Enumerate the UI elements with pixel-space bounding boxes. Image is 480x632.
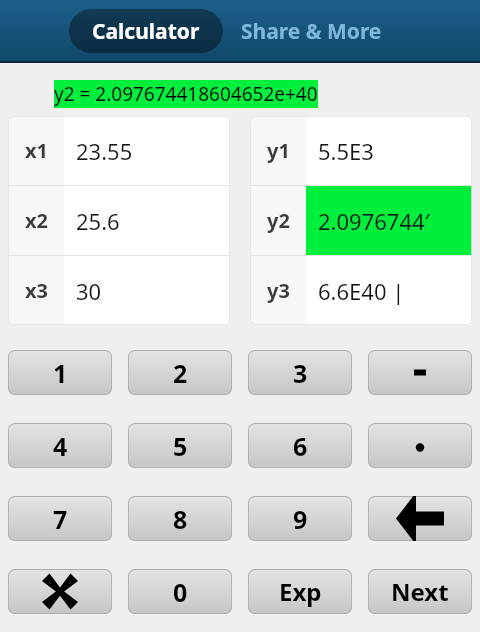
staticText: 4 [53, 429, 68, 463]
button[interactable]: 9 [248, 496, 352, 541]
button[interactable]: y1 [250, 116, 472, 185]
staticText: Exp [279, 575, 322, 608]
button[interactable]: x2 [8, 186, 230, 255]
staticText: x1 [25, 137, 48, 164]
staticText: Share & More [241, 17, 382, 46]
staticText: 5 [173, 429, 188, 463]
staticText: 30 [76, 276, 102, 306]
staticText: y2 [267, 207, 290, 234]
button[interactable]: Exp [248, 569, 352, 614]
button[interactable]: 5 [128, 423, 232, 468]
staticText: 2 [173, 356, 188, 390]
button[interactable]: 1 [8, 350, 112, 395]
staticText: 0 [173, 575, 188, 609]
staticText: 8 [173, 502, 188, 536]
button[interactable]: Clear [8, 569, 112, 614]
button[interactable]: Decimal point [368, 423, 472, 468]
button[interactable]: Next [368, 569, 472, 614]
button[interactable]: 2 [128, 350, 232, 395]
staticText: 7 [53, 502, 68, 536]
button[interactable]: x3 [8, 256, 230, 325]
staticText: 6 [293, 429, 308, 463]
staticText: x3 [25, 277, 48, 304]
button[interactable]: Calculator [69, 9, 223, 53]
staticText: Calculator [92, 17, 200, 46]
staticText: 5.5E3 [318, 136, 374, 166]
staticText: 9 [293, 502, 308, 536]
staticText: 23.55 [76, 136, 133, 166]
staticText: y2 = 2.097674418604652e+40 [54, 81, 318, 107]
staticText: 6.6E40 | [318, 276, 405, 306]
staticText: y3 [267, 277, 290, 304]
button[interactable]: y3 [250, 256, 472, 325]
staticText: y1 [267, 137, 290, 164]
button[interactable]: Backspace [368, 496, 472, 541]
button[interactable]: 8 [128, 496, 232, 541]
staticText: 25.6 [76, 206, 120, 236]
staticText: Next [391, 575, 449, 608]
button[interactable]: y2 [250, 186, 472, 255]
button[interactable]: Share & More [223, 9, 400, 53]
staticText: 3 [293, 356, 308, 390]
button[interactable]: 3 [248, 350, 352, 395]
staticText: 1 [53, 356, 68, 390]
button[interactable]: x1 [8, 116, 230, 185]
button[interactable]: 4 [8, 423, 112, 468]
button[interactable]: 7 [8, 496, 112, 541]
staticText: x2 [25, 207, 48, 234]
button[interactable]: 6 [248, 423, 352, 468]
staticText: 2.0976744′ [318, 206, 430, 236]
button[interactable]: Minus [368, 350, 472, 395]
button[interactable]: 0 [128, 569, 232, 614]
